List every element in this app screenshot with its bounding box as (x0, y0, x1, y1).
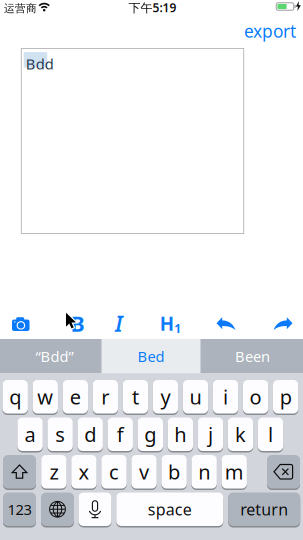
staticText: f (117, 421, 124, 448)
staticText: 下午5:19 (128, 0, 176, 15)
button[interactable]: g (138, 417, 163, 452)
staticText: l (268, 421, 273, 448)
staticText: g (144, 421, 156, 448)
button[interactable]: t (123, 379, 148, 414)
button[interactable]: o (243, 379, 268, 414)
staticText: Been (235, 346, 270, 366)
staticText: e (70, 383, 81, 410)
button[interactable]: 123 (3, 492, 36, 527)
button[interactable]: space (116, 492, 223, 527)
staticText: q (9, 383, 21, 410)
staticText: i (223, 383, 228, 410)
button[interactable]: a (17, 417, 43, 452)
button[interactable]: Undo (216, 316, 238, 332)
staticText: H (160, 311, 174, 336)
button[interactable]: f (107, 417, 133, 452)
button[interactable]: “Bdd” (0, 339, 101, 373)
button[interactable]: q (2, 379, 28, 414)
staticText: “Bdd” (35, 346, 73, 366)
staticText: h (174, 421, 186, 448)
button[interactable]: r (93, 379, 118, 414)
button[interactable]: e (63, 379, 88, 414)
button[interactable]: Delete (267, 454, 300, 489)
button[interactable]: h (168, 417, 193, 452)
staticText: o (250, 383, 262, 410)
button[interactable]: u (183, 379, 208, 414)
button[interactable]: v (131, 454, 157, 489)
staticText: return (240, 499, 288, 520)
staticText: a (25, 421, 36, 448)
staticText: t (132, 383, 139, 410)
button[interactable]: j (198, 417, 223, 452)
staticText: j (208, 421, 213, 448)
button[interactable]: m (221, 454, 247, 489)
staticText: u (189, 383, 201, 410)
staticText: v (139, 458, 149, 485)
staticText: B (70, 309, 84, 338)
staticText: b (168, 458, 180, 485)
button[interactable]: Dictate (78, 492, 111, 527)
staticText: space (148, 499, 192, 520)
staticText: y (160, 383, 170, 410)
button[interactable]: i (213, 379, 238, 414)
staticText: k (235, 421, 246, 448)
staticText: p (280, 383, 292, 410)
button[interactable]: Bold (65, 314, 89, 332)
button[interactable]: Italic (109, 314, 129, 332)
staticText: 1 (174, 320, 181, 336)
staticText: c (109, 458, 119, 485)
button[interactable]: Heading 1 (158, 314, 182, 332)
staticText: z (49, 458, 58, 485)
button[interactable]: w (32, 379, 58, 414)
staticText: d (84, 421, 96, 448)
button[interactable]: Bed (101, 339, 200, 373)
staticText: 123 (7, 499, 31, 519)
button[interactable]: l (258, 417, 283, 452)
button[interactable]: Next keyboard (41, 492, 74, 527)
button[interactable]: x (71, 454, 97, 489)
button[interactable]: n (191, 454, 217, 489)
button[interactable]: export (239, 22, 301, 40)
staticText: m (225, 458, 244, 485)
staticText: I (115, 309, 123, 338)
button[interactable]: Shift (3, 454, 36, 489)
staticText: r (101, 383, 109, 410)
button[interactable]: return (228, 492, 300, 527)
button[interactable]: y (153, 379, 178, 414)
button[interactable]: z (41, 454, 67, 489)
button[interactable]: d (77, 417, 103, 452)
staticText: export (244, 19, 296, 42)
button[interactable]: Redo (271, 316, 293, 332)
staticText: Bdd (26, 54, 54, 73)
button[interactable]: b (161, 454, 187, 489)
button[interactable]: p (273, 379, 298, 414)
staticText: n (198, 458, 210, 485)
staticText: w (37, 383, 53, 410)
button[interactable]: k (228, 417, 253, 452)
button[interactable]: c (101, 454, 127, 489)
staticText: x (78, 458, 89, 485)
button[interactable]: Camera (10, 315, 34, 333)
staticText: Bed (137, 346, 164, 366)
staticText: s (55, 421, 65, 448)
button[interactable]: s (47, 417, 73, 452)
button[interactable]: Been (202, 339, 303, 373)
staticText: 运营商 (4, 2, 37, 15)
